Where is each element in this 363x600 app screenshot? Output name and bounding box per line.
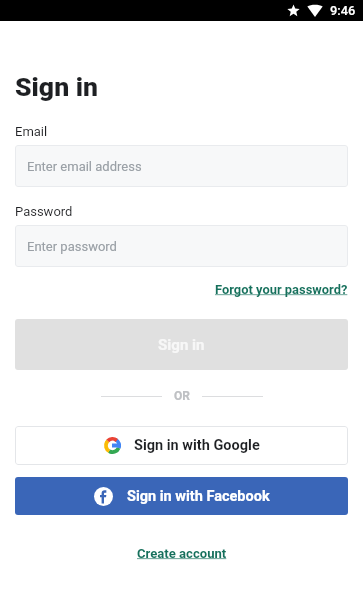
- staticText: Sign in with Facebook: [127, 488, 270, 505]
- staticText: Forgot your password?: [215, 282, 348, 297]
- staticText: Enter email address: [27, 159, 142, 174]
- button[interactable]: Facebook logo: [15, 477, 348, 515]
- button[interactable]: Forgot your password?: [215, 282, 348, 297]
- other: Facebook logo: [94, 487, 113, 506]
- staticText: 9:46: [330, 3, 356, 18]
- staticText: Create account: [137, 546, 227, 561]
- staticText: Password: [15, 204, 73, 219]
- button[interactable]: Enter email address: [15, 145, 348, 187]
- staticText: Sign in: [158, 336, 205, 354]
- staticText: Email: [15, 124, 48, 139]
- staticText: OR: [174, 389, 190, 403]
- other: Starred: [287, 4, 300, 17]
- button[interactable]: Google logo: [15, 426, 348, 465]
- staticText: Sign in: [15, 71, 98, 102]
- staticText: Sign in with Google: [134, 437, 260, 454]
- other: Google logo: [104, 437, 121, 454]
- staticText: Enter password: [27, 239, 117, 254]
- other: Wi-Fi: [307, 4, 323, 17]
- button[interactable]: Enter password: [15, 225, 348, 267]
- button[interactable]: Create account: [137, 546, 227, 561]
